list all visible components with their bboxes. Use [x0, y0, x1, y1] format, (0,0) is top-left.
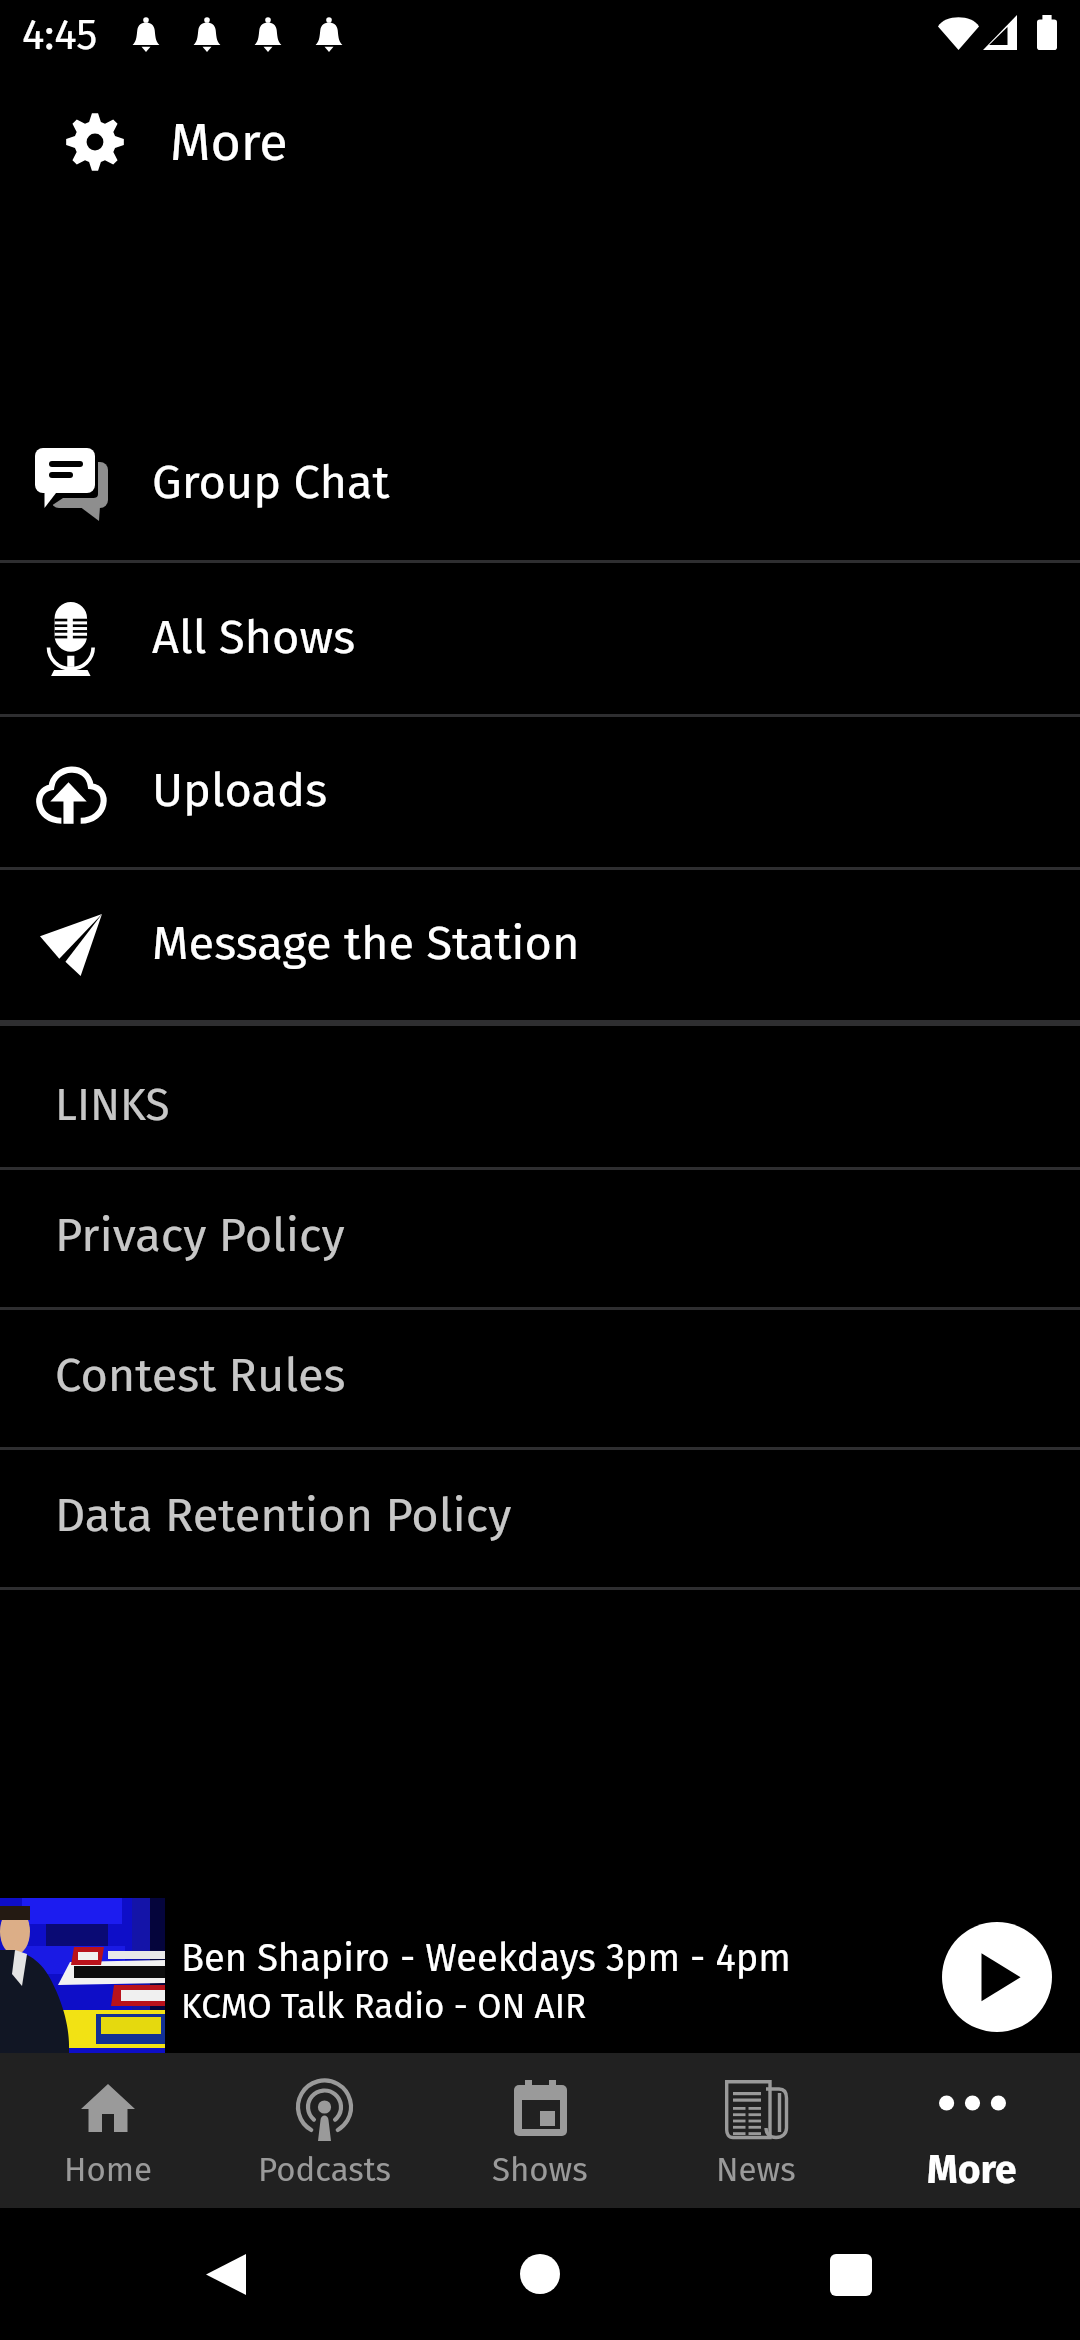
staticText: LINKS: [55, 1079, 170, 1132]
staticText: Message the Station: [152, 915, 580, 971]
staticText: More: [927, 2147, 1017, 2194]
button[interactable]: Ben Shapiro - Weekdays 3pm - 4pm: [0, 1897, 1080, 2053]
button[interactable]: Contest Rules: [0, 1310, 1080, 1447]
button[interactable]: Group Chat: [0, 408, 1080, 560]
button[interactable]: Recent apps: [830, 2254, 872, 2296]
button[interactable]: Uploads: [0, 717, 1080, 867]
staticText: More: [170, 111, 288, 173]
staticText: News: [716, 2150, 796, 2190]
staticText: Shows: [492, 2150, 588, 2190]
button[interactable]: All Shows: [0, 563, 1080, 714]
staticText: 4:45: [22, 10, 98, 60]
staticText: Contest Rules: [55, 1347, 346, 1403]
staticText: All Shows: [152, 609, 356, 665]
button[interactable]: Shows: [432, 2053, 648, 2208]
button[interactable]: Message the Station: [0, 870, 1080, 1020]
button[interactable]: More: [864, 2053, 1080, 2208]
button[interactable]: Data Retention Policy: [0, 1450, 1080, 1587]
button[interactable]: Play: [942, 1922, 1052, 2032]
staticText: Data Retention Policy: [55, 1487, 512, 1543]
staticText: Uploads: [152, 762, 328, 818]
staticText: Privacy Policy: [55, 1207, 345, 1263]
staticText: Group Chat: [152, 454, 390, 510]
button[interactable]: News: [648, 2053, 864, 2208]
staticText: Ben Shapiro - Weekdays 3pm - 4pm: [181, 1935, 791, 1981]
button[interactable]: Privacy Policy: [0, 1170, 1080, 1307]
staticText: KCMO Talk Radio - ON AIR: [181, 1985, 587, 2027]
button[interactable]: Home: [0, 2053, 216, 2208]
staticText: Podcasts: [258, 2150, 391, 2190]
button[interactable]: Home: [520, 2254, 560, 2294]
button[interactable]: Back: [206, 2252, 246, 2297]
staticText: Home: [64, 2150, 152, 2190]
button[interactable]: Settings: [66, 113, 124, 171]
button[interactable]: Podcasts: [216, 2053, 432, 2208]
